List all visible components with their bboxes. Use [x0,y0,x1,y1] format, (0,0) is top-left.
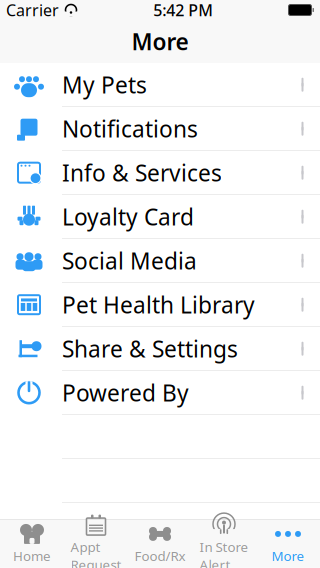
staticText: My Pets [62,70,147,100]
staticText: Carrier [6,0,59,21]
staticText: Loyalty Card [62,202,194,232]
button[interactable]: Powered By [0,371,320,415]
staticText: Share & Settings [62,334,238,364]
button[interactable]: Home [0,520,64,568]
staticText: Social Media [62,246,197,276]
staticText: More [271,547,304,565]
button[interactable]: My Pets [0,63,320,107]
staticText: More [131,26,188,56]
staticText: 5:42 PM [153,0,213,21]
button[interactable]: Social Media [0,239,320,283]
staticText: Pet Health Library [62,290,255,320]
button[interactable]: Share & Settings [0,327,320,371]
button[interactable]: Appt Request [64,520,128,568]
button[interactable]: Notifications [0,107,320,151]
staticText: Home [13,547,51,565]
staticText: Powered By [62,378,189,408]
staticText: In Store Alert [199,538,248,568]
staticText: Notifications [62,114,198,144]
button[interactable]: Loyalty Card [0,195,320,239]
staticText: Appt Request [70,538,121,568]
button[interactable]: More [256,520,320,568]
button[interactable]: Pet Health Library [0,283,320,327]
button[interactable]: In Store Alert [192,520,256,568]
staticText: Info & Services [62,158,222,188]
button[interactable]: Info & Services [0,151,320,195]
staticText: Food/Rx [134,547,185,565]
button[interactable]: Food/Rx [128,520,192,568]
